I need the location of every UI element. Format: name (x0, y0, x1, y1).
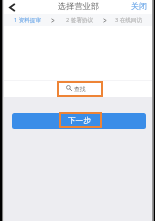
button[interactable]: 关闭 (125, 0, 152, 14)
button[interactable]: 查找 (66, 81, 86, 95)
staticText: 下一步 (68, 116, 91, 126)
staticText: 选择营业部 (58, 1, 99, 11)
button[interactable]: Back (4, 0, 18, 14)
staticText: 3 在线回访 (115, 16, 143, 24)
staticText: 查找 (74, 85, 86, 92)
staticText: 关闭 (131, 1, 148, 11)
staticText: 2 签署协议 (66, 16, 94, 24)
button[interactable]: 下一步 (12, 113, 146, 129)
staticText: 1 资料提审 (14, 16, 42, 24)
